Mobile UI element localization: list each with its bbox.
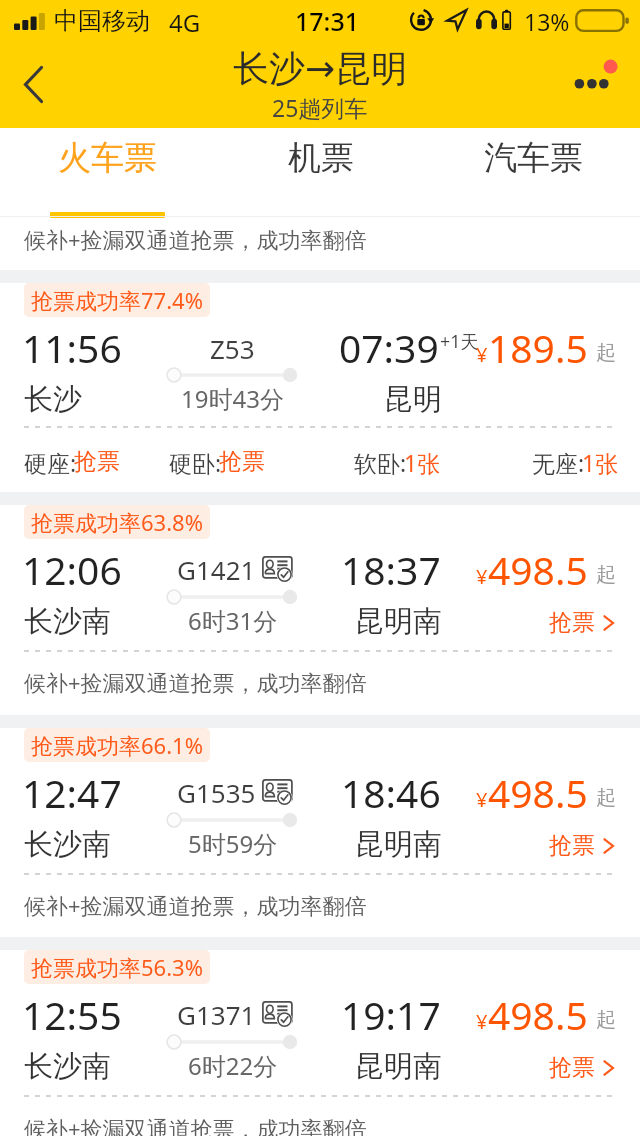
staticText: 昆明南 — [355, 1048, 442, 1085]
staticText: 抢票 — [219, 447, 265, 476]
staticText: 昆明南 — [355, 603, 442, 640]
button[interactable]: 汽车票 — [427, 128, 640, 218]
staticText: 6时31分 — [188, 604, 278, 637]
staticText: 4G — [169, 6, 201, 39]
staticText: 抢票 — [549, 608, 595, 637]
button[interactable]: 抢票成功率77.4% — [0, 0, 640, 53]
staticText: 长沙→昆明 — [233, 46, 408, 91]
staticText: G1371 — [177, 997, 256, 1032]
staticText: 13% — [524, 6, 570, 37]
staticText: +1天 — [440, 329, 479, 354]
staticText: 起 — [596, 1007, 616, 1032]
staticText: Z53 — [210, 331, 255, 366]
staticText: 长沙 — [24, 381, 82, 418]
button[interactable]: 抢票成功率63.8% — [0, 0, 640, 53]
staticText: 18:37 — [341, 543, 441, 596]
staticText: 12:06 — [22, 543, 122, 596]
staticText: 抢票 — [549, 831, 595, 860]
button[interactable]: 抢票成功率56.3% — [0, 0, 640, 53]
staticText: 无座: — [532, 447, 585, 478]
staticText: 硬座: — [24, 447, 77, 478]
staticText: 候补+捡漏双通道抢票，成功率翻倍 — [24, 224, 367, 254]
button[interactable]: 抢票 — [549, 831, 615, 860]
staticText: 25趟列车 — [272, 92, 368, 123]
staticText: 1张 — [404, 447, 441, 478]
staticText: 机票 — [288, 137, 354, 179]
button[interactable]: 抢票 — [549, 1053, 615, 1082]
staticText: 12:47 — [22, 766, 122, 819]
button[interactable]: Back — [4, 55, 62, 113]
staticText: 抢票成功率77.4% — [31, 285, 203, 315]
staticText: 长沙南 — [24, 826, 111, 863]
staticText: 抢票成功率56.3% — [31, 952, 203, 982]
staticText: 抢票 — [74, 447, 120, 476]
staticText: 起 — [596, 785, 616, 810]
staticText: 抢票 — [549, 1053, 595, 1082]
staticText: G1421 — [177, 552, 256, 587]
staticText: 长沙南 — [24, 1048, 111, 1085]
staticText: 17:31 — [295, 4, 360, 38]
staticText: 火车票 — [58, 137, 157, 179]
staticText: 候补+捡漏双通道抢票，成功率翻倍 — [24, 890, 367, 920]
button[interactable]: 火车票 — [0, 128, 214, 218]
staticText: 18:46 — [341, 766, 441, 819]
staticText: 12:55 — [22, 988, 122, 1041]
staticText: 昆明南 — [355, 826, 442, 863]
button[interactable]: 机票 — [214, 128, 427, 218]
staticText: 19:17 — [341, 988, 441, 1041]
staticText: 498.5 — [488, 766, 588, 819]
staticText: 候补+捡漏双通道抢票，成功率翻倍 — [24, 1113, 367, 1136]
staticText: ¥ — [476, 341, 488, 368]
staticText: 07:39 — [339, 321, 439, 374]
staticText: 昆明 — [384, 381, 442, 418]
staticText: ¥ — [476, 1008, 488, 1035]
staticText: 长沙南 — [24, 603, 111, 640]
staticText: 起 — [596, 340, 616, 365]
staticText: 汽车票 — [484, 137, 583, 179]
staticText: ¥ — [476, 786, 488, 813]
staticText: 6时22分 — [188, 1049, 278, 1082]
staticText: 中国移动 — [54, 6, 150, 36]
staticText: 1张 — [582, 447, 619, 478]
staticText: 起 — [596, 562, 616, 587]
staticText: 19时43分 — [181, 382, 284, 415]
staticText: 软卧: — [354, 447, 407, 478]
staticText: 11:56 — [22, 321, 122, 374]
staticText: 抢票成功率66.1% — [31, 730, 203, 760]
staticText: 抢票成功率63.8% — [31, 507, 203, 537]
staticText: 硬卧: — [169, 447, 222, 478]
button[interactable]: 抢票 — [549, 608, 615, 637]
staticText: 5时59分 — [188, 827, 278, 860]
staticText: 候补+捡漏双通道抢票，成功率翻倍 — [24, 667, 367, 697]
staticText: 498.5 — [488, 543, 588, 596]
button[interactable]: More options — [564, 50, 636, 118]
staticText: ¥ — [476, 563, 488, 590]
staticText: 189.5 — [488, 321, 588, 374]
button[interactable]: 抢票成功率66.1% — [0, 0, 640, 53]
staticText: G1535 — [177, 775, 256, 810]
staticText: 498.5 — [488, 988, 588, 1041]
